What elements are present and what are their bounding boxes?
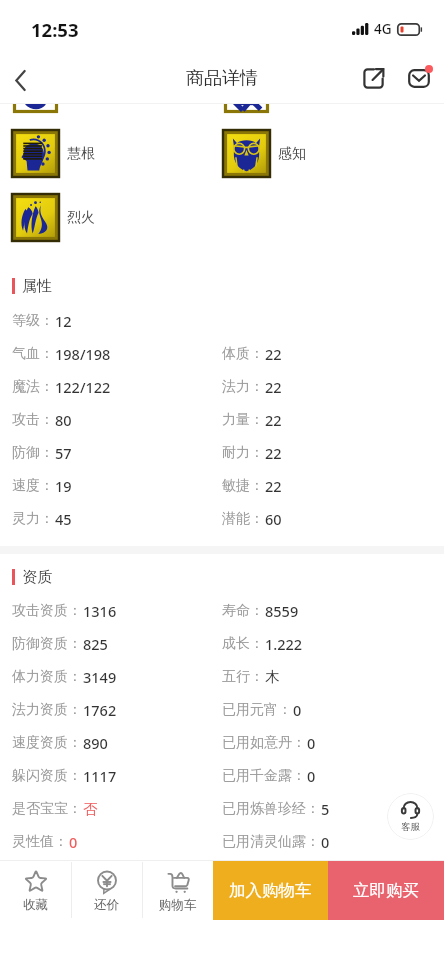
staticText: 还价 [94, 897, 119, 913]
staticText: 已用元宵： [222, 701, 292, 719]
staticText: 攻击资质： [12, 602, 82, 620]
staticText: 已用炼兽珍经： [222, 800, 320, 818]
staticText: 立即购买 [353, 880, 419, 901]
staticText: 是否宝宝： [12, 800, 82, 818]
staticText: 45 [55, 509, 72, 529]
staticText: 825 [83, 634, 108, 654]
staticText: 0 [307, 766, 316, 786]
staticText: 客服 [401, 821, 420, 833]
staticText: 体质： [222, 345, 264, 363]
staticText: 5 [321, 799, 330, 819]
staticText: 19 [55, 476, 72, 496]
staticText: 22 [265, 410, 282, 430]
staticText: 慧根 [67, 145, 95, 163]
staticText: 灵力： [12, 510, 54, 528]
staticText: 3149 [83, 667, 117, 687]
staticText: 攻击： [12, 411, 54, 429]
staticText: 速度资质： [12, 734, 82, 752]
staticText: 12 [55, 311, 72, 331]
staticText: 890 [83, 733, 108, 753]
button[interactable]: 加入购物车 [213, 861, 328, 920]
staticText: 防御： [12, 444, 54, 462]
staticText: 0 [69, 832, 78, 852]
staticText: 0 [307, 733, 316, 753]
staticText: 购物车 [159, 897, 197, 913]
staticText: 商品详情 [186, 67, 258, 90]
staticText: 力量： [222, 411, 264, 429]
button[interactable]: 收藏 [0, 861, 71, 920]
staticText: 已用千金露： [222, 767, 306, 785]
staticText: 木 [265, 668, 280, 686]
staticText: 感知 [278, 145, 306, 163]
staticText: 寿命： [222, 602, 264, 620]
staticText: 1117 [83, 766, 117, 786]
staticText: 122/122 [55, 377, 111, 397]
staticText: 速度： [12, 477, 54, 495]
staticText: 加入购物车 [229, 880, 312, 901]
staticText: 收藏 [23, 897, 48, 913]
staticText: 12:53 [31, 17, 79, 42]
staticText: 等级： [12, 312, 54, 330]
staticText: 法力： [222, 378, 264, 396]
staticText: 潜能： [222, 510, 264, 528]
staticText: 0 [293, 700, 302, 720]
button[interactable]: 购物车 [142, 861, 213, 920]
staticText: 1.222 [265, 634, 303, 654]
staticText: 属性 [22, 277, 52, 295]
staticText: 烈火 [67, 209, 95, 227]
button[interactable]: Messages [397, 55, 441, 101]
button[interactable]: Back [0, 57, 40, 103]
staticText: 否 [83, 800, 98, 818]
staticText: 22 [265, 377, 282, 397]
staticText: 魔法： [12, 378, 54, 396]
button[interactable]: 客服 Customer service [387, 793, 434, 840]
staticText: 躲闪资质： [12, 767, 82, 785]
staticText: 0 [321, 832, 330, 852]
staticText: 1762 [83, 700, 117, 720]
staticText: 防御资质： [12, 635, 82, 653]
staticText: 耐力： [222, 444, 264, 462]
staticText: 22 [265, 344, 282, 364]
button[interactable]: 还价 [71, 861, 142, 920]
staticText: 成长： [222, 635, 264, 653]
staticText: 60 [265, 509, 282, 529]
staticText: 1316 [83, 601, 117, 621]
staticText: 57 [55, 443, 72, 463]
staticText: 4G [374, 20, 392, 38]
staticText: 198/198 [55, 344, 111, 364]
staticText: 五行： [222, 668, 264, 686]
staticText: 气血： [12, 345, 54, 363]
staticText: 资质 [22, 568, 52, 586]
staticText: 已用如意丹： [222, 734, 306, 752]
staticText: 8559 [265, 601, 299, 621]
staticText: 体力资质： [12, 668, 82, 686]
staticText: 22 [265, 476, 282, 496]
button[interactable]: Share [352, 55, 396, 101]
staticText: 敏捷： [222, 477, 264, 495]
staticText: 80 [55, 410, 72, 430]
staticText: 已用清灵仙露： [222, 833, 320, 851]
staticText: 法力资质： [12, 701, 82, 719]
staticText: 22 [265, 443, 282, 463]
staticText: 灵性值： [12, 833, 68, 851]
button[interactable]: 立即购买 [328, 861, 444, 920]
